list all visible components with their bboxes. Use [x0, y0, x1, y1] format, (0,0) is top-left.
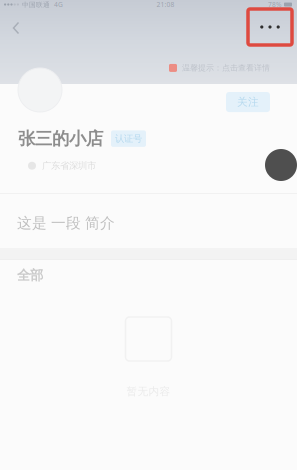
staticText: 中国联通 4G: [22, 0, 63, 9]
staticText: 全部: [17, 267, 43, 283]
staticText: 这是 一段 简介: [17, 214, 115, 232]
staticText: 温馨提示：点击查看详情: [182, 63, 270, 73]
staticText: 78%: [268, 0, 282, 9]
button[interactable]: Back: [3, 14, 29, 42]
staticText: 广东省深圳市: [42, 160, 96, 171]
button[interactable]: 关注: [226, 92, 270, 112]
staticText: 21:08: [156, 0, 174, 9]
button[interactable]: More options: [248, 9, 292, 45]
staticText: 张三的小店: [18, 128, 103, 149]
staticText: 关注: [237, 95, 259, 109]
staticText: 认证号: [115, 133, 142, 144]
staticText: 暂无内容: [126, 385, 170, 398]
